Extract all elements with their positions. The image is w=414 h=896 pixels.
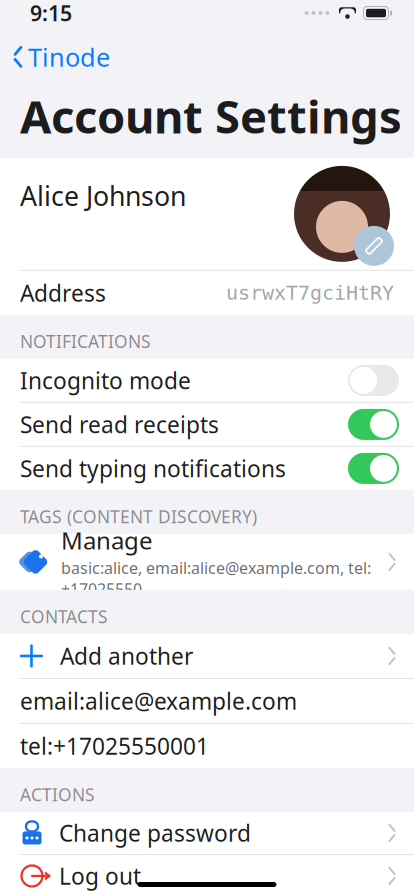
staticText: Tinode	[28, 40, 110, 74]
staticText: NOTIFICATIONS	[20, 330, 151, 353]
staticText: Add another	[60, 641, 193, 671]
button[interactable]: Log out	[0, 855, 414, 896]
button[interactable]: Incognito mode	[0, 359, 414, 402]
button[interactable]: Send typing notifications	[0, 447, 414, 490]
staticText: Send typing notifications	[20, 453, 286, 483]
staticText: Send read receipts	[20, 409, 219, 439]
staticText: Account Settings	[20, 86, 402, 146]
staticText: basic:alice, email:alice@example.com, te…	[61, 557, 371, 600]
button[interactable]: Tinode	[0, 35, 120, 79]
button[interactable]: Send read receipts	[0, 403, 414, 446]
staticText: email:alice@example.com	[20, 686, 297, 716]
button[interactable]: tel:+17025550001	[0, 724, 414, 768]
button[interactable]: Change profile photo	[292, 164, 392, 264]
button[interactable]: Manage	[0, 534, 414, 590]
button[interactable]: Change password	[0, 812, 414, 854]
staticText: Address	[20, 278, 106, 308]
staticText: CONTACTS	[20, 605, 108, 628]
staticText: 9:15	[30, 0, 72, 27]
staticText: Log out	[59, 861, 141, 891]
staticText: usrwxT7gciHtRY	[226, 281, 394, 304]
button[interactable]: email:alice@example.com	[0, 679, 414, 723]
staticText: Manage	[61, 524, 153, 556]
staticText: tel:+17025550001	[20, 731, 209, 761]
button[interactable]: Add another	[0, 634, 414, 678]
staticText: Incognito mode	[20, 365, 191, 395]
staticText: ACTIONS	[20, 783, 95, 806]
staticText: TAGS (CONTENT DISCOVERY)	[20, 505, 257, 528]
staticText: Alice Johnson	[20, 178, 186, 213]
staticText: Change password	[59, 818, 251, 848]
